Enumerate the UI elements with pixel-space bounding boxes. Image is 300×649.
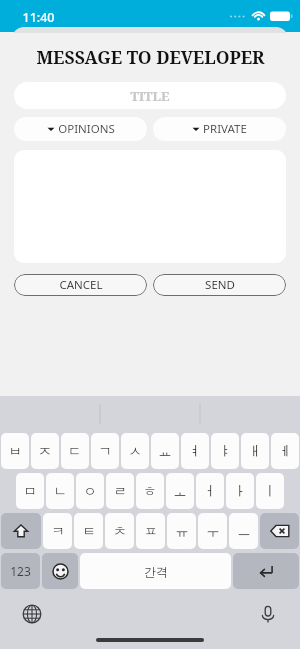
staticText: 간격 bbox=[144, 564, 168, 579]
staticText: ㅛ bbox=[158, 443, 172, 460]
staticText: ㄷ bbox=[68, 443, 82, 460]
button[interactable]: 간격 bbox=[80, 553, 231, 589]
button[interactable]: Emoji bbox=[42, 553, 78, 589]
button[interactable]: ㅇ bbox=[76, 473, 104, 509]
staticText: ㄹ bbox=[113, 483, 127, 500]
button[interactable]: TITLE bbox=[14, 82, 286, 109]
staticText: ㅠ bbox=[175, 523, 189, 540]
button[interactable]: ㅋ bbox=[43, 513, 72, 549]
staticText: ㅇ bbox=[83, 483, 97, 500]
button[interactable]: OPINIONS bbox=[14, 117, 147, 141]
button[interactable]: 123 bbox=[1, 553, 40, 589]
button[interactable]: PRIVATE bbox=[153, 117, 286, 141]
staticText: OPINIONS bbox=[58, 121, 115, 137]
button[interactable]: ㅏ bbox=[226, 473, 254, 509]
button[interactable]: ㅊ bbox=[105, 513, 134, 549]
button[interactable]: ㄱ bbox=[91, 433, 119, 469]
button[interactable]: ㅕ bbox=[181, 433, 209, 469]
button[interactable]: SEND bbox=[153, 274, 286, 296]
staticText: ㅊ bbox=[113, 523, 127, 540]
button[interactable]: ㅑ bbox=[211, 433, 239, 469]
button[interactable]: ㅅ bbox=[121, 433, 149, 469]
button[interactable]: ㅜ bbox=[198, 513, 227, 549]
staticText: ㅗ bbox=[173, 483, 187, 500]
button[interactable]: ㅣ bbox=[256, 473, 284, 509]
button[interactable]: Backspace bbox=[260, 513, 299, 549]
staticText: TITLE bbox=[130, 87, 170, 105]
button[interactable]: ㄴ bbox=[46, 473, 74, 509]
staticText: ㅜ bbox=[206, 523, 220, 540]
staticText: ㅅ bbox=[128, 443, 142, 460]
button[interactable]: ㄷ bbox=[61, 433, 89, 469]
staticText: ㅍ bbox=[144, 523, 158, 540]
button[interactable]: Voice input bbox=[254, 600, 282, 628]
button[interactable]: Change language bbox=[18, 600, 46, 628]
button[interactable]: ㅐ bbox=[241, 433, 269, 469]
button[interactable]: ㅗ bbox=[166, 473, 194, 509]
staticText: 123 bbox=[10, 563, 31, 579]
staticText: ㅡ bbox=[237, 523, 251, 540]
button[interactable]: ㅈ bbox=[31, 433, 59, 469]
button[interactable]: ㅌ bbox=[74, 513, 103, 549]
staticText: ㅕ bbox=[188, 443, 202, 460]
button[interactable]: ㅓ bbox=[196, 473, 224, 509]
staticText: ㅐ bbox=[248, 443, 262, 460]
button[interactable]: ㄹ bbox=[106, 473, 134, 509]
staticText: ㅔ bbox=[278, 443, 292, 460]
staticText: ㅌ bbox=[82, 523, 96, 540]
staticText: ㅎ bbox=[143, 483, 157, 500]
staticText: ㅏ bbox=[233, 483, 247, 500]
button[interactable]: ㅡ bbox=[229, 513, 258, 549]
staticText: ㅂ bbox=[8, 443, 22, 460]
staticText: CANCEL bbox=[59, 277, 103, 293]
button[interactable]: ㅎ bbox=[136, 473, 164, 509]
staticText: ㅓ bbox=[203, 483, 217, 500]
staticText: ㄱ bbox=[98, 443, 112, 460]
staticText: ㅈ bbox=[38, 443, 52, 460]
button[interactable]: Shift bbox=[1, 513, 41, 549]
button[interactable]: ㅠ bbox=[167, 513, 196, 549]
staticText: ㅑ bbox=[218, 443, 232, 460]
staticText: MESSAGE TO DEVELOPER bbox=[36, 45, 265, 69]
button[interactable]: ㅍ bbox=[136, 513, 165, 549]
button[interactable]: ㅁ bbox=[16, 473, 44, 509]
staticText: ㅣ bbox=[263, 483, 277, 500]
staticText: 11:40 bbox=[22, 9, 55, 26]
button[interactable]: CANCEL bbox=[14, 274, 147, 296]
button[interactable]: ㅛ bbox=[151, 433, 179, 469]
button[interactable]: ㅂ bbox=[1, 433, 29, 469]
button[interactable]: ㅔ bbox=[271, 433, 299, 469]
staticText: PRIVATE bbox=[203, 121, 247, 137]
staticText: ㅋ bbox=[51, 523, 65, 540]
button[interactable]: Enter bbox=[233, 553, 299, 589]
staticText: SEND bbox=[205, 277, 235, 293]
staticText: ㅁ bbox=[23, 483, 37, 500]
staticText: ㄴ bbox=[53, 483, 67, 500]
